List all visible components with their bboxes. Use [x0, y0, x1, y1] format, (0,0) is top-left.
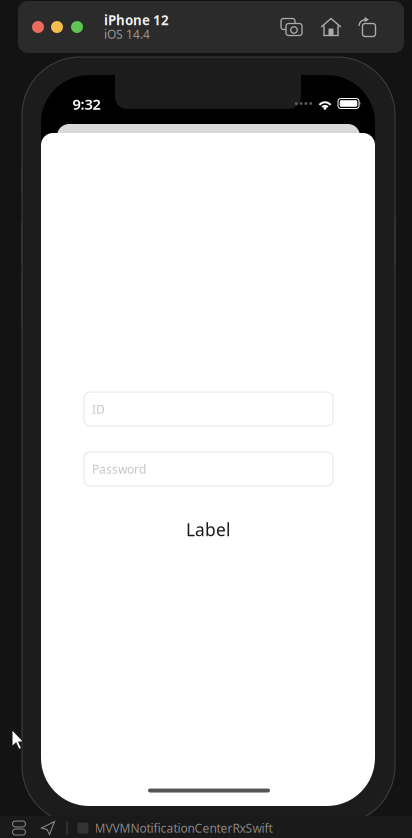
staticText: iPhone 12 — [104, 11, 169, 29]
staticText: Password — [92, 461, 146, 477]
button[interactable]: Minimise — [51, 21, 63, 33]
button[interactable]: Location — [40, 820, 55, 835]
button[interactable]: MVVMNotificationCenterRxSwift — [77, 820, 272, 836]
button[interactable]: Close — [32, 21, 44, 33]
staticText: ID — [92, 401, 105, 417]
staticText: iOS 14.4 — [104, 26, 150, 42]
button[interactable]: ID — [84, 392, 333, 426]
button[interactable]: Rotate — [357, 17, 377, 37]
button[interactable]: Password — [84, 452, 333, 486]
staticText: Label — [186, 518, 230, 541]
button[interactable]: Screenshot — [281, 18, 303, 35]
staticText: MVVMNotificationCenterRxSwift — [94, 820, 272, 836]
button[interactable]: Control Centre — [11, 821, 27, 835]
button[interactable]: Home — [320, 17, 341, 36]
button[interactable]: Zoom — [71, 21, 83, 33]
staticText: 9:32 — [72, 94, 100, 114]
